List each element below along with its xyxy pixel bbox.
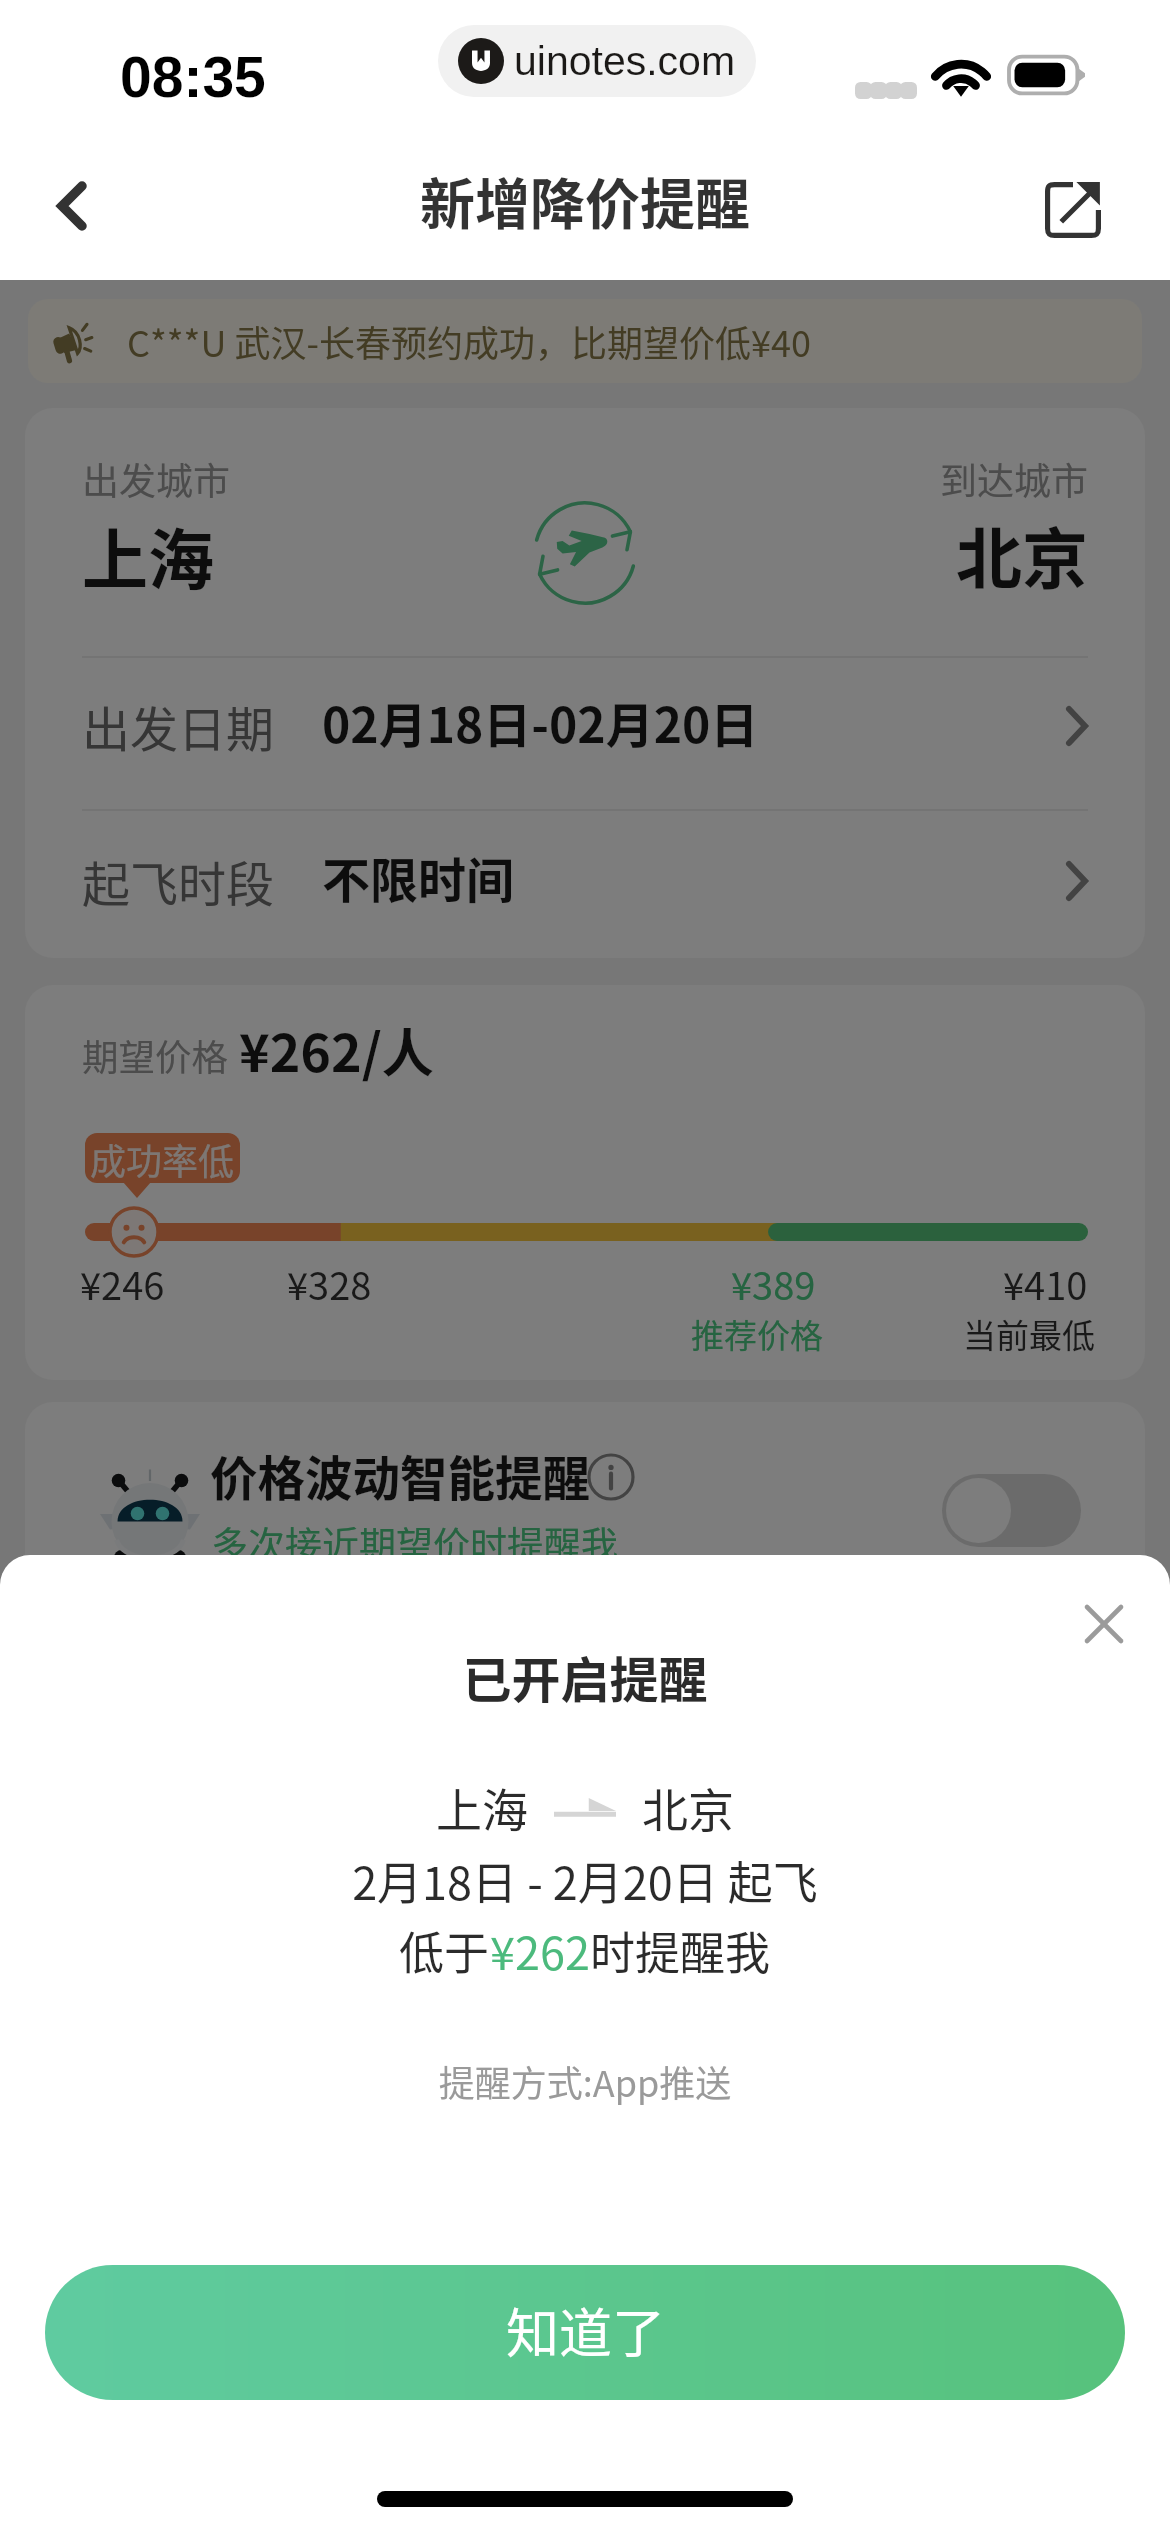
staticText: 价格波动智能提醒	[210, 1441, 590, 1510]
button[interactable]: C***U 武汉-长春预约成功，比期望价低¥40	[28, 299, 1142, 383]
staticText: 上海	[436, 1774, 528, 1841]
button[interactable]: Close	[1049, 1569, 1159, 1679]
staticText: 北京	[642, 1774, 734, 1841]
staticText: 推荐价格	[691, 1310, 823, 1358]
staticText: ¥262	[490, 1918, 590, 1983]
button[interactable]: 知道了	[45, 2265, 1125, 2400]
staticText: 多次接近期望价时提醒我	[211, 1516, 618, 1570]
staticText: 期望价格	[82, 1029, 228, 1082]
staticText: 不限时间	[322, 842, 515, 912]
staticText: 知道了	[506, 2292, 665, 2369]
staticText: ¥410	[1003, 1256, 1088, 1311]
staticText: uinotes.com	[514, 38, 736, 84]
button[interactable]: Share	[1022, 159, 1124, 261]
staticText: ¥328	[287, 1256, 372, 1311]
staticText: 到达城市	[940, 452, 1088, 506]
button[interactable]: 起飞时段	[25, 806, 1145, 956]
staticText: 2月18日 - 2月20日 起飞	[0, 1848, 1170, 1913]
staticText: 出发城市	[82, 452, 230, 506]
button[interactable]: Back	[22, 156, 122, 256]
staticText: 已开启提醒	[0, 1641, 1170, 1712]
staticText: ¥389	[731, 1256, 816, 1311]
staticText: 上海	[82, 507, 214, 603]
staticText: ¥262/人	[239, 1012, 434, 1087]
staticText: 提醒方式:App推送	[0, 2055, 1170, 2107]
staticText: 当前最低	[963, 1310, 1095, 1358]
staticText: 02月18日-02月20日	[322, 687, 759, 757]
staticText: C***U 武汉-长春预约成功，比期望价低¥40	[127, 315, 811, 367]
staticText: 08:35	[120, 45, 266, 109]
staticText: 北京	[956, 506, 1088, 602]
staticText: 低于	[399, 1918, 490, 1983]
staticText: 时提醒我	[590, 1918, 771, 1983]
staticText: 起飞时段	[82, 846, 275, 916]
button[interactable]: 出发日期	[25, 651, 1145, 801]
staticText: ¥246	[80, 1256, 165, 1311]
staticText: 出发日期	[82, 691, 275, 761]
staticText: 成功率低	[90, 1133, 235, 1183]
staticText: 新增降价提醒	[420, 160, 751, 240]
button[interactable]	[942, 1474, 1081, 1547]
